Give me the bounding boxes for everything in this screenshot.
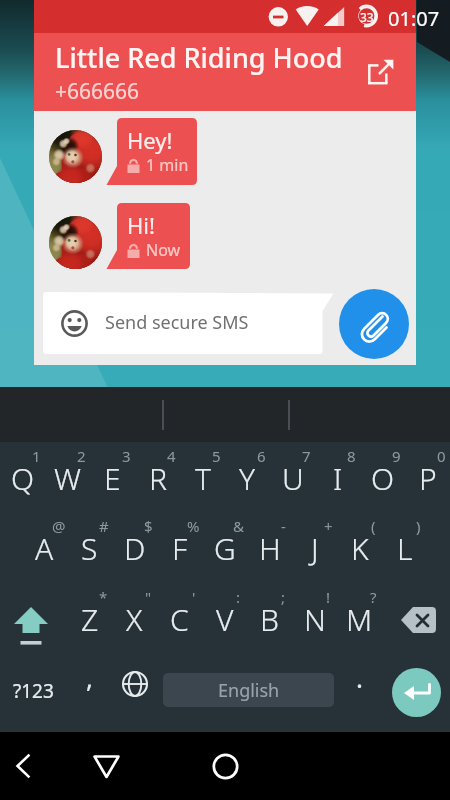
button[interactable]: Enter bbox=[392, 668, 441, 717]
staticText: E bbox=[104, 458, 121, 499]
staticText: 01:07 bbox=[388, 5, 440, 32]
staticText: 9 bbox=[392, 446, 401, 466]
button[interactable]: Hi! bbox=[106, 203, 190, 269]
button[interactable]: ? bbox=[337, 579, 382, 649]
staticText: A bbox=[35, 528, 54, 569]
staticText: Z bbox=[81, 599, 99, 640]
button[interactable]: 1 bbox=[0, 438, 45, 508]
button[interactable]: ?123 bbox=[0, 649, 67, 719]
button[interactable]: % bbox=[157, 508, 202, 578]
staticText: P bbox=[419, 458, 437, 499]
staticText: : bbox=[236, 587, 241, 607]
staticText: & bbox=[233, 516, 244, 536]
button[interactable]: Backspace bbox=[383, 579, 450, 649]
button[interactable]: 4 bbox=[135, 438, 180, 508]
button[interactable]: Back bbox=[0, 732, 46, 800]
staticText: R bbox=[149, 458, 167, 499]
button[interactable]: Open conversation in new window bbox=[359, 49, 404, 94]
staticText: ; bbox=[281, 587, 286, 607]
staticText: ( bbox=[371, 516, 376, 536]
button[interactable]: 5 bbox=[180, 438, 225, 508]
staticText: B bbox=[260, 599, 279, 640]
staticText: 7 bbox=[302, 446, 311, 466]
staticText: Hey! bbox=[127, 125, 173, 155]
staticText: 3 bbox=[122, 446, 131, 466]
button[interactable]: 3 bbox=[90, 438, 135, 508]
button[interactable]: Change keyboard language bbox=[112, 649, 157, 719]
button[interactable]: . bbox=[337, 649, 382, 719]
button[interactable]: : bbox=[202, 579, 247, 649]
staticText: M bbox=[346, 599, 373, 640]
staticText: @ bbox=[52, 516, 66, 536]
staticText: 8 bbox=[347, 446, 356, 466]
staticText: C bbox=[170, 599, 189, 640]
staticText: K bbox=[351, 528, 369, 569]
staticText: Now bbox=[146, 239, 181, 261]
staticText: * bbox=[99, 587, 108, 607]
button[interactable]: 8 bbox=[315, 438, 360, 508]
button[interactable]: 6 bbox=[225, 438, 270, 508]
staticText: 1 bbox=[32, 446, 41, 466]
staticText: 6 bbox=[257, 446, 266, 466]
button[interactable]: Shift bbox=[0, 579, 67, 649]
staticText: X bbox=[126, 599, 143, 640]
button[interactable]: # bbox=[67, 508, 112, 578]
staticText: 4 bbox=[167, 446, 176, 466]
button[interactable]: 9 bbox=[360, 438, 405, 508]
button[interactable]: $ bbox=[112, 508, 157, 578]
button[interactable]: English bbox=[163, 673, 334, 707]
staticText: ) bbox=[416, 516, 421, 536]
staticText: , bbox=[86, 660, 93, 695]
staticText: Little Red Riding Hood bbox=[55, 39, 343, 76]
staticText: Send secure SMS bbox=[105, 310, 249, 335]
staticText: - bbox=[281, 516, 286, 536]
staticText: J bbox=[311, 528, 319, 569]
button[interactable]: ; bbox=[247, 579, 292, 649]
button[interactable]: ( bbox=[337, 508, 382, 578]
button[interactable]: ' bbox=[157, 579, 202, 649]
staticText: % bbox=[187, 516, 200, 536]
staticText: H bbox=[259, 528, 281, 569]
staticText: 2 bbox=[77, 446, 86, 466]
staticText: L bbox=[397, 528, 413, 569]
staticText: 33 bbox=[360, 9, 374, 25]
button[interactable]: - bbox=[247, 508, 292, 578]
staticText: F bbox=[172, 528, 188, 569]
button[interactable]: @ bbox=[22, 508, 67, 578]
staticText: D bbox=[124, 528, 146, 569]
button[interactable]: , bbox=[67, 649, 112, 719]
staticText: " bbox=[145, 587, 152, 607]
button[interactable]: Emoji bbox=[47, 296, 101, 350]
staticText: G bbox=[214, 528, 236, 569]
button[interactable]: 0 bbox=[405, 438, 450, 508]
staticText: 5 bbox=[212, 446, 221, 466]
button[interactable]: Hide keyboard bbox=[83, 732, 129, 800]
staticText: $ bbox=[144, 516, 153, 536]
staticText: Q bbox=[11, 458, 35, 499]
button[interactable]: Attach file bbox=[339, 289, 409, 359]
staticText: O bbox=[371, 458, 395, 499]
button[interactable]: 7 bbox=[270, 438, 315, 508]
button[interactable]: " bbox=[112, 579, 157, 649]
button[interactable]: & bbox=[202, 508, 247, 578]
staticText: + bbox=[324, 516, 333, 536]
button[interactable]: Hey! bbox=[106, 118, 197, 185]
staticText: +666666 bbox=[55, 77, 140, 106]
staticText: ! bbox=[326, 587, 331, 607]
staticText: Y bbox=[239, 458, 256, 499]
staticText: ? bbox=[370, 587, 377, 607]
staticText: N bbox=[304, 599, 326, 640]
staticText: S bbox=[81, 528, 98, 569]
staticText: ' bbox=[192, 587, 196, 607]
button[interactable]: Home bbox=[202, 732, 248, 800]
button[interactable]: ) bbox=[382, 508, 427, 578]
staticText: English bbox=[218, 678, 280, 703]
staticText: Hi! bbox=[127, 210, 155, 240]
staticText: 0 bbox=[437, 446, 446, 466]
button[interactable]: 2 bbox=[45, 438, 90, 508]
button[interactable]: + bbox=[292, 508, 337, 578]
staticText: V bbox=[216, 599, 234, 640]
staticText: I bbox=[333, 458, 343, 499]
button[interactable]: * bbox=[67, 579, 112, 649]
button[interactable]: ! bbox=[292, 579, 337, 649]
